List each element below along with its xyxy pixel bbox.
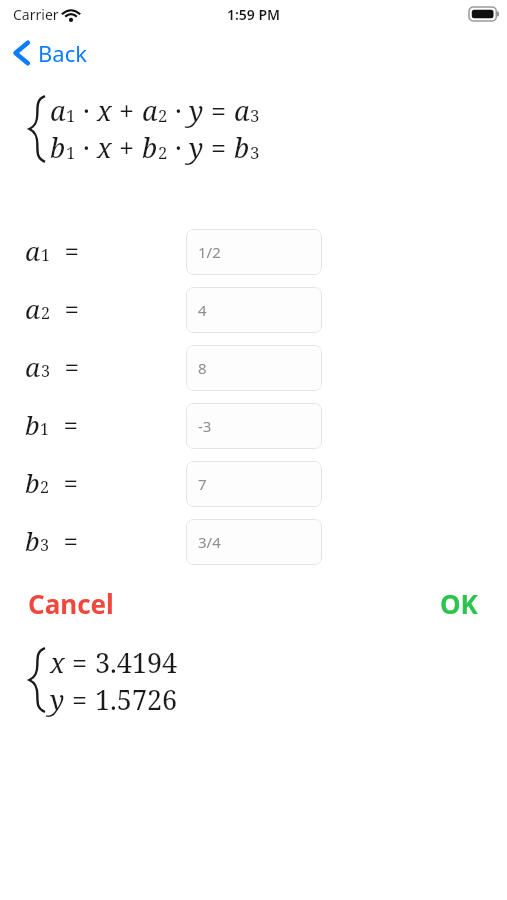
- staticText: =: [51, 291, 80, 326]
- staticText: b: [25, 523, 40, 558]
- staticText: 2: [158, 141, 168, 164]
- staticText: x: [50, 644, 65, 681]
- button[interactable]: 1/2: [186, 229, 322, 275]
- staticText: 7: [198, 474, 207, 494]
- staticText: x: [97, 129, 112, 166]
- staticText: b: [142, 129, 158, 166]
- button[interactable]: -3: [186, 403, 322, 449]
- staticText: x: [97, 92, 112, 129]
- staticText: ·: [76, 129, 97, 166]
- staticText: 3.4194: [95, 644, 178, 681]
- button[interactable]: 3/4: [186, 519, 322, 565]
- staticText: 1: [40, 418, 50, 440]
- staticText: 2: [40, 476, 50, 498]
- staticText: 3/4: [198, 532, 221, 552]
- staticText: 1: [66, 104, 76, 127]
- staticText: Cancel: [28, 586, 114, 621]
- staticText: 2: [158, 104, 168, 127]
- staticText: b: [50, 129, 66, 166]
- staticText: 4: [198, 300, 207, 320]
- staticText: a: [25, 349, 41, 384]
- staticText: 1/2: [198, 242, 221, 262]
- staticText: ·: [168, 129, 189, 166]
- staticText: 1.5726: [95, 681, 178, 718]
- staticText: Back: [38, 38, 87, 68]
- staticText: b: [234, 129, 250, 166]
- staticText: =: [50, 407, 79, 442]
- staticText: y: [189, 129, 204, 166]
- staticText: +: [112, 92, 142, 129]
- button[interactable]: Cancel: [18, 582, 124, 625]
- button[interactable]: 7: [186, 461, 322, 507]
- staticText: 3: [250, 104, 260, 127]
- staticText: +: [112, 129, 142, 166]
- staticText: =: [65, 681, 95, 718]
- button[interactable]: 4: [186, 287, 322, 333]
- staticText: =: [65, 644, 95, 681]
- staticText: 3: [250, 141, 260, 164]
- staticText: 3: [41, 360, 51, 382]
- staticText: a: [142, 92, 158, 129]
- staticText: a: [234, 92, 250, 129]
- staticText: =: [51, 349, 80, 384]
- button[interactable]: 8: [186, 345, 322, 391]
- staticText: b: [25, 407, 40, 442]
- staticText: a: [50, 92, 66, 129]
- staticText: OK: [440, 586, 478, 621]
- staticText: y: [50, 681, 65, 718]
- staticText: =: [50, 465, 79, 500]
- staticText: 3: [40, 534, 50, 556]
- staticText: b: [25, 465, 40, 500]
- staticText: =: [50, 523, 79, 558]
- staticText: 1: [66, 141, 76, 164]
- staticText: a: [25, 233, 41, 268]
- staticText: a: [25, 291, 41, 326]
- staticText: 8: [198, 358, 207, 378]
- staticText: 1:59 PM: [0, 5, 507, 900]
- staticText: =: [51, 233, 80, 268]
- other: Back: [14, 41, 29, 65]
- staticText: 1: [41, 244, 51, 266]
- button[interactable]: OK: [430, 582, 488, 625]
- staticText: 2: [41, 302, 51, 324]
- staticText: Carrier: [13, 5, 59, 24]
- staticText: ·: [168, 92, 189, 129]
- staticText: ·: [76, 92, 97, 129]
- staticText: -3: [198, 416, 212, 436]
- button[interactable]: Back: [8, 36, 93, 70]
- staticText: =: [204, 129, 234, 166]
- staticText: =: [204, 92, 234, 129]
- staticText: y: [189, 92, 204, 129]
